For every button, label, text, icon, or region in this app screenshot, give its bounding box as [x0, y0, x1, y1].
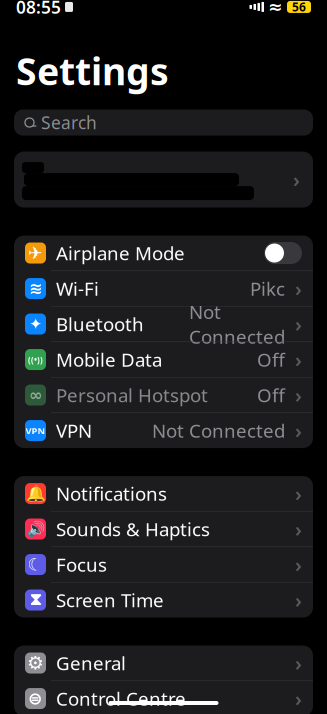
staticText: › [295, 311, 302, 337]
button[interactable]: Search [14, 109, 313, 135]
staticText: VPN [56, 418, 92, 443]
staticText: ⧗ [29, 592, 41, 608]
staticText: ((•)) [28, 354, 43, 365]
staticText: General [56, 651, 126, 675]
button[interactable]: › [14, 151, 313, 207]
staticText: 08:55 [16, 0, 61, 18]
button[interactable]: ☾ [14, 547, 313, 582]
staticText: › [295, 587, 302, 613]
button[interactable]: 🔊 [14, 511, 313, 546]
button[interactable]: ✈ [14, 235, 313, 270]
staticText: › [295, 551, 302, 578]
staticText: Wi-Fi [56, 276, 99, 301]
staticText: 🔊 [26, 521, 44, 537]
staticText: ☾ [27, 555, 43, 574]
staticText: › [295, 382, 302, 408]
staticText: ⚙ [27, 652, 44, 674]
staticText: Personal Hotspot [56, 383, 208, 407]
staticText: ✈ [28, 243, 43, 263]
button[interactable]: ⊜ [14, 681, 313, 714]
staticText: Mobile Data [56, 347, 162, 372]
button[interactable]: ✦ [14, 306, 313, 341]
staticText: ⊜ [28, 689, 43, 708]
staticText: Control Centre [56, 686, 186, 711]
staticText: Pikc [250, 276, 285, 301]
staticText: 56 [292, 0, 306, 15]
staticText: ✦ [29, 315, 42, 333]
button[interactable]: 🔔 [14, 476, 313, 511]
staticText: Focus [56, 552, 107, 577]
staticText: Off [257, 347, 285, 372]
button[interactable]: ≋ [14, 271, 313, 306]
staticText: ∞ [29, 386, 42, 404]
button[interactable]: VPN [14, 413, 313, 448]
button[interactable]: ∞ [14, 377, 313, 412]
button[interactable]: ⧗ [14, 582, 313, 617]
staticText: › [295, 650, 302, 676]
staticText: 🔔 [25, 484, 45, 503]
staticText: Search [41, 111, 97, 134]
staticText: › [295, 685, 302, 712]
staticText: Off [257, 383, 285, 407]
staticText: Notifications [56, 481, 167, 506]
staticText: Not Connected [189, 299, 285, 349]
staticText: › [295, 346, 302, 373]
staticText: Screen Time [56, 588, 164, 612]
staticText: Bluetooth [56, 312, 144, 336]
staticText: VPN [25, 424, 45, 437]
staticText: › [295, 480, 302, 507]
staticText: › [293, 166, 300, 193]
staticText: ≋ [29, 279, 42, 298]
staticText: › [295, 275, 302, 302]
staticText: › [295, 516, 302, 542]
staticText: Sounds & Haptics [56, 517, 210, 541]
staticText: Settings [16, 46, 169, 96]
staticText: Not Connected [152, 418, 285, 443]
button[interactable]: ((•)) [14, 342, 313, 377]
button[interactable]: ⚙ [14, 645, 313, 680]
staticText: Airplane Mode [56, 241, 185, 265]
staticText: ≈ [268, 0, 283, 17]
staticText: › [295, 417, 302, 444]
